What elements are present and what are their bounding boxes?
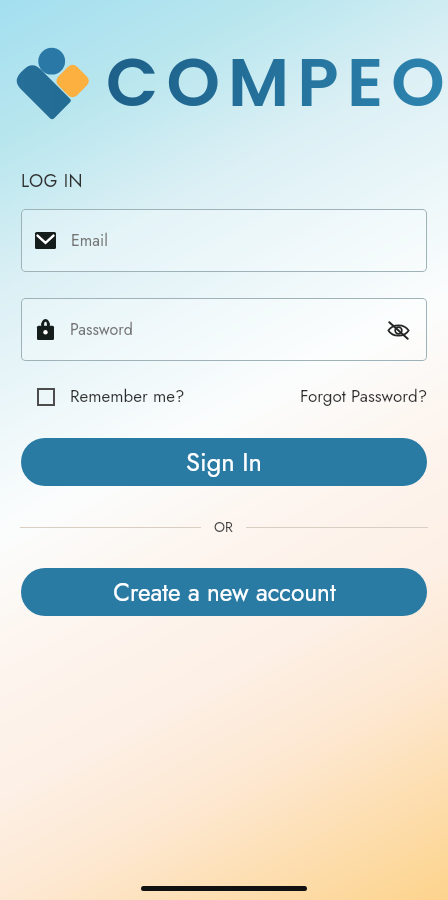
button[interactable]: Create a new account: [21, 568, 427, 616]
button[interactable]: Show password: [383, 315, 413, 345]
button[interactable]: Password: [21, 298, 427, 361]
staticText: OR: [214, 517, 233, 537]
button[interactable]: Remember me?: [37, 384, 185, 409]
button[interactable]: Sign In: [21, 438, 427, 486]
staticText: LOG IN: [21, 168, 83, 194]
staticText: Remember me?: [70, 384, 185, 409]
staticText: Password: [70, 318, 133, 341]
staticText: Email: [71, 229, 108, 252]
button[interactable]: Forgot Password?: [300, 384, 428, 409]
staticText: Create a new account: [113, 575, 336, 610]
staticText: COMPEO: [106, 35, 448, 130]
staticText: Sign In: [186, 444, 262, 481]
button[interactable]: Email: [21, 209, 427, 272]
